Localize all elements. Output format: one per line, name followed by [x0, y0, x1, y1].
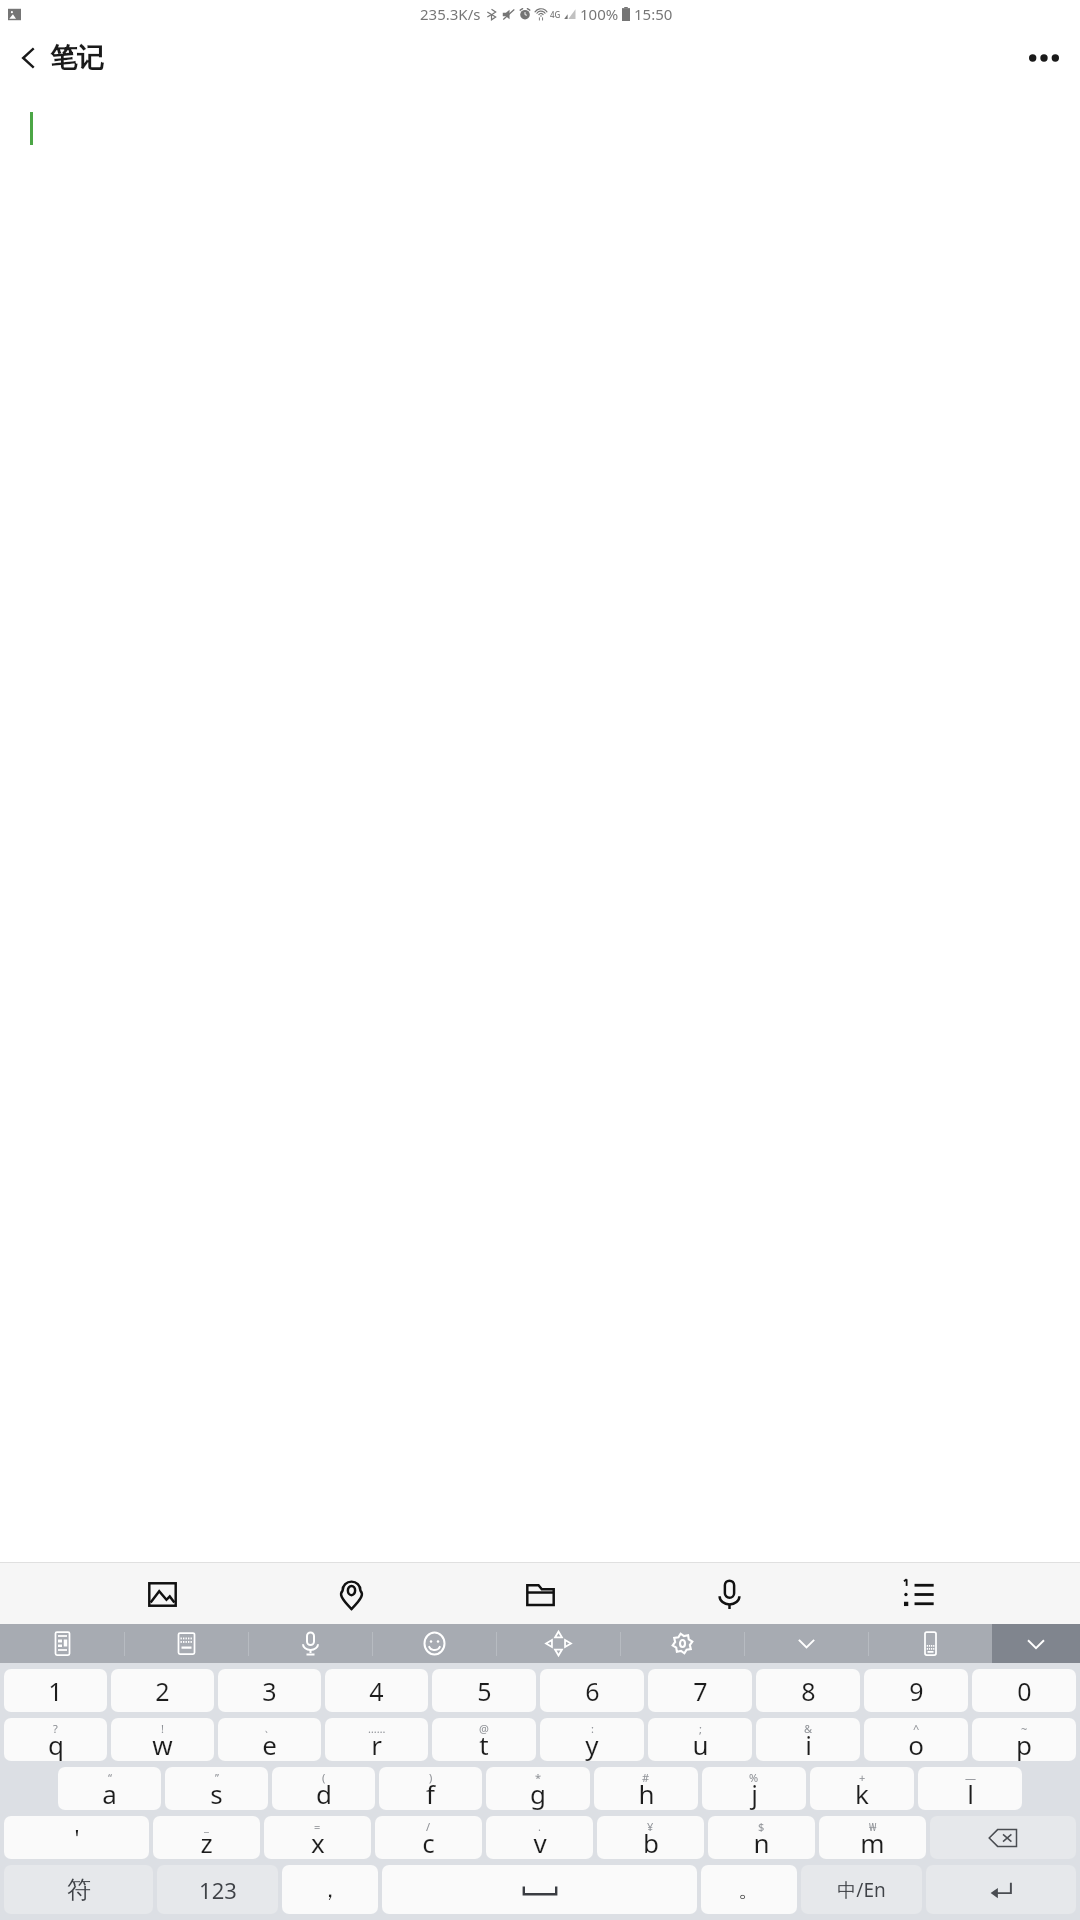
staticText: 、: [264, 1721, 275, 1735]
button[interactable]: 、: [218, 1718, 321, 1761]
staticText: ¥: [647, 1819, 654, 1834]
button[interactable]: 中/En: [801, 1865, 922, 1914]
button[interactable]: _: [153, 1816, 260, 1859]
button[interactable]: More options: [1018, 32, 1070, 84]
button[interactable]: Voice input: [249, 1624, 372, 1663]
button[interactable]: Hide keyboard: [992, 1624, 1080, 1663]
button[interactable]: Voice input: [702, 1567, 756, 1621]
button[interactable]: 123: [157, 1865, 278, 1914]
button[interactable]: 4: [325, 1669, 428, 1712]
button[interactable]: %: [702, 1767, 806, 1810]
button[interactable]: 1: [4, 1669, 107, 1712]
button[interactable]: 。: [701, 1865, 797, 1914]
button[interactable]: Collapse: [745, 1624, 868, 1663]
staticText: b: [643, 1825, 659, 1859]
button[interactable]: 7: [648, 1669, 752, 1712]
staticText: g: [530, 1776, 546, 1810]
button[interactable]: Move cursor: [497, 1624, 620, 1663]
staticText: .: [538, 1819, 541, 1834]
staticText: 9: [909, 1674, 924, 1708]
button[interactable]: Space: [382, 1865, 697, 1914]
button[interactable]: Enter: [926, 1865, 1076, 1914]
staticText: q: [48, 1727, 64, 1761]
button[interactable]: ^: [864, 1718, 968, 1761]
button[interactable]: &: [756, 1718, 860, 1761]
button[interactable]: ，: [282, 1865, 378, 1914]
staticText: 123: [199, 1875, 237, 1905]
button[interactable]: +: [810, 1767, 914, 1810]
button[interactable]: 9: [864, 1669, 968, 1712]
button[interactable]: ……: [325, 1718, 428, 1761]
button[interactable]: 3: [218, 1669, 321, 1712]
staticText: ，: [319, 1876, 341, 1904]
button[interactable]: Clipboard: [0, 1624, 124, 1663]
button[interactable]: 符: [4, 1865, 153, 1914]
button[interactable]: 6: [540, 1669, 644, 1712]
button[interactable]: —: [918, 1767, 1022, 1810]
button[interactable]: ¥: [597, 1816, 704, 1859]
button[interactable]: ?: [4, 1718, 107, 1761]
staticText: (: [322, 1770, 326, 1785]
staticText: 3: [262, 1674, 277, 1708]
button[interactable]: Backspace: [930, 1816, 1076, 1859]
button[interactable]: Emoji: [373, 1624, 496, 1663]
button[interactable]: Keyboard layout: [125, 1624, 248, 1663]
staticText: 4G: [550, 9, 561, 20]
button[interactable]: Attach file: [513, 1567, 567, 1621]
staticText: d: [316, 1776, 332, 1810]
staticText: n: [753, 1825, 770, 1859]
button[interactable]: Floating keyboard: [869, 1624, 992, 1663]
button[interactable]: Settings: [621, 1624, 744, 1663]
staticText: —: [965, 1770, 976, 1785]
button[interactable]: Insert image: [135, 1567, 189, 1621]
button[interactable]: ;: [648, 1718, 752, 1761]
staticText: ;: [699, 1721, 702, 1736]
button[interactable]: /: [375, 1816, 482, 1859]
button[interactable]: “: [58, 1767, 161, 1810]
staticText: m: [860, 1825, 885, 1859]
staticText: 0: [1017, 1674, 1032, 1708]
staticText: 6: [585, 1674, 600, 1708]
button[interactable]: :: [540, 1718, 644, 1761]
staticText: 中/En: [837, 1877, 886, 1903]
button[interactable]: =: [264, 1816, 371, 1859]
button[interactable]: 0: [972, 1669, 1076, 1712]
staticText: r: [371, 1727, 382, 1761]
button[interactable]: ): [379, 1767, 482, 1810]
staticText: f: [426, 1776, 435, 1810]
button[interactable]: Back: [8, 38, 48, 78]
button[interactable]: Insert location: [324, 1567, 378, 1621]
button[interactable]: ”: [165, 1767, 268, 1810]
staticText: 8: [801, 1674, 816, 1708]
staticText: 235.3K/s: [420, 4, 481, 24]
staticText: x: [311, 1825, 325, 1859]
button[interactable]: Numbered list: [891, 1567, 945, 1621]
button[interactable]: #: [594, 1767, 698, 1810]
staticText: y: [585, 1727, 599, 1761]
button[interactable]: !: [111, 1718, 214, 1761]
button[interactable]: @: [432, 1718, 536, 1761]
staticText: p: [1016, 1727, 1032, 1761]
button[interactable]: ~: [972, 1718, 1076, 1761]
staticText: $: [758, 1819, 765, 1834]
staticText: l: [967, 1776, 974, 1810]
button[interactable]: 5: [432, 1669, 536, 1712]
staticText: /: [426, 1819, 431, 1834]
button[interactable]: 8: [756, 1669, 860, 1712]
staticText: ): [429, 1770, 433, 1785]
staticText: ……: [368, 1721, 386, 1736]
staticText: +: [859, 1770, 866, 1785]
button[interactable]: ₩: [819, 1816, 926, 1859]
button[interactable]: $: [708, 1816, 815, 1859]
staticText: a: [102, 1776, 117, 1810]
button[interactable]: 2: [111, 1669, 214, 1712]
button[interactable]: ': [4, 1816, 149, 1859]
button[interactable]: (: [272, 1767, 375, 1810]
staticText: i: [805, 1727, 812, 1761]
staticText: e: [262, 1727, 277, 1761]
button[interactable]: *: [486, 1767, 590, 1810]
button[interactable]: .: [486, 1816, 593, 1859]
staticText: z: [200, 1825, 213, 1859]
staticText: *: [535, 1770, 542, 1785]
